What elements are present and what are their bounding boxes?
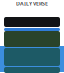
staticText: DAILY VERSE — [16, 0, 48, 7]
